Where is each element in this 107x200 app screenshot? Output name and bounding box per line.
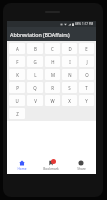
button[interactable]: Z bbox=[9, 108, 25, 119]
button[interactable]: P bbox=[9, 82, 25, 93]
staticText: E bbox=[85, 46, 88, 52]
staticText: M bbox=[51, 72, 55, 78]
button[interactable]: Home bbox=[7, 156, 36, 174]
staticText: W bbox=[50, 98, 55, 104]
button[interactable]: K bbox=[9, 69, 25, 80]
staticText: Share bbox=[77, 167, 86, 171]
button[interactable]: N bbox=[62, 69, 77, 80]
button[interactable]: Bookmark bbox=[36, 156, 66, 174]
staticText: 88% bbox=[75, 22, 81, 26]
staticText: C bbox=[51, 46, 54, 52]
button[interactable]: A bbox=[9, 43, 25, 54]
button[interactable]: D bbox=[62, 43, 77, 54]
button[interactable]: B bbox=[27, 43, 43, 54]
staticText: P bbox=[16, 85, 19, 91]
staticText: R bbox=[51, 85, 54, 91]
button[interactable]: W bbox=[45, 95, 60, 106]
button[interactable]: H bbox=[45, 56, 60, 67]
staticText: Home bbox=[17, 167, 27, 171]
button[interactable]: Abbreviation (BDAffairs) bbox=[7, 27, 96, 41]
staticText: D bbox=[68, 46, 72, 52]
button[interactable]: Share bbox=[66, 156, 96, 174]
staticText: J bbox=[86, 59, 88, 65]
staticText: T bbox=[85, 85, 88, 91]
button[interactable]: S bbox=[62, 82, 77, 93]
staticText: S bbox=[68, 85, 71, 91]
staticText: 1:17 PM bbox=[82, 22, 94, 26]
staticText: V bbox=[34, 98, 37, 104]
button[interactable]: I bbox=[62, 56, 77, 67]
button[interactable]: Y bbox=[79, 95, 94, 106]
button[interactable]: U bbox=[9, 95, 25, 106]
staticText: Q bbox=[33, 85, 37, 91]
button[interactable]: F bbox=[9, 56, 25, 67]
staticText: O bbox=[85, 72, 89, 78]
button[interactable]: O bbox=[79, 69, 94, 80]
staticText: I bbox=[69, 59, 71, 65]
staticText: G bbox=[33, 59, 37, 65]
staticText: Abbreviation (BDAffairs) bbox=[10, 31, 70, 38]
button[interactable]: V bbox=[27, 95, 43, 106]
button[interactable]: C bbox=[45, 43, 60, 54]
staticText: Z bbox=[16, 111, 19, 117]
staticText: B bbox=[34, 46, 37, 52]
staticText: X bbox=[68, 98, 71, 104]
staticText: K bbox=[16, 72, 19, 78]
staticText: H bbox=[51, 59, 55, 65]
staticText: A bbox=[16, 46, 19, 52]
button[interactable]: X bbox=[62, 95, 77, 106]
button[interactable]: E bbox=[79, 43, 94, 54]
staticText: F bbox=[16, 59, 19, 65]
staticText: U bbox=[15, 98, 19, 104]
staticText: Bookmark bbox=[43, 167, 59, 171]
button[interactable]: Q bbox=[27, 82, 43, 93]
button[interactable]: M bbox=[45, 69, 60, 80]
button[interactable]: T bbox=[79, 82, 94, 93]
button[interactable]: J bbox=[79, 56, 94, 67]
staticText: N bbox=[68, 72, 72, 78]
button[interactable]: G bbox=[27, 56, 43, 67]
staticText: Y bbox=[85, 98, 88, 104]
staticText: L bbox=[34, 72, 37, 78]
button[interactable]: L bbox=[27, 69, 43, 80]
button[interactable]: R bbox=[45, 82, 60, 93]
